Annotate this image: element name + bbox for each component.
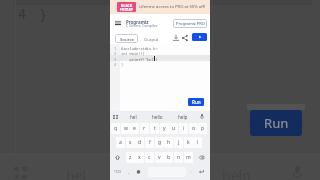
staticText: r xyxy=(143,125,146,132)
button[interactable]: q xyxy=(111,123,120,134)
button[interactable]: emoji xyxy=(133,166,143,177)
button[interactable]: ?123 xyxy=(111,166,124,177)
button[interactable]: help xyxy=(174,111,192,122)
button[interactable]: o xyxy=(189,123,198,134)
button[interactable]: g xyxy=(155,137,164,148)
staticText: f xyxy=(149,139,151,146)
staticText: Output xyxy=(144,36,159,42)
staticText: v xyxy=(158,154,161,161)
button[interactable]: Programiz PRO xyxy=(173,19,207,28)
button[interactable]: , xyxy=(125,166,132,177)
staticText: Run xyxy=(192,99,201,105)
button[interactable]: m xyxy=(184,152,193,163)
staticText: } xyxy=(39,4,48,23)
button[interactable]: r xyxy=(140,123,149,134)
button[interactable]: x xyxy=(135,152,144,163)
button[interactable]: n xyxy=(174,152,183,163)
staticText: s xyxy=(129,139,132,146)
button[interactable]: del xyxy=(195,152,207,163)
button[interactable]: p xyxy=(198,123,207,134)
staticText: printf("hel") xyxy=(121,57,158,62)
button[interactable]: Menu xyxy=(112,17,123,28)
button[interactable]: u xyxy=(169,123,178,134)
staticText: u xyxy=(172,125,176,132)
staticText: h xyxy=(167,139,171,146)
button[interactable]: Clipboard xyxy=(111,113,119,121)
button[interactable]: t xyxy=(150,123,159,134)
button[interactable]: y xyxy=(160,123,169,134)
button[interactable]: z xyxy=(126,152,135,163)
staticText: e xyxy=(133,125,136,132)
staticText: w xyxy=(124,125,128,132)
staticText: x xyxy=(138,154,141,161)
staticText: c xyxy=(148,154,151,161)
staticText: Source xyxy=(120,36,134,42)
staticText: a xyxy=(119,139,122,146)
staticText: #include<stdio.h> xyxy=(121,46,158,51)
staticText: C Online Compiler xyxy=(126,23,158,28)
staticText: help xyxy=(178,114,188,120)
staticText: } xyxy=(121,62,124,67)
button[interactable]: shift xyxy=(111,152,123,163)
staticText: g xyxy=(158,139,162,146)
staticText: 3 xyxy=(114,57,117,62)
button[interactable]: a xyxy=(116,137,125,148)
staticText: z xyxy=(129,154,132,161)
button[interactable]: Voice input xyxy=(198,112,206,120)
button[interactable]: d xyxy=(135,137,144,148)
staticText: 1 xyxy=(114,46,117,51)
staticText: i xyxy=(183,125,185,132)
staticText: l xyxy=(197,139,199,146)
staticText: 4 xyxy=(18,4,27,23)
staticText: . xyxy=(191,169,193,175)
staticText: Run xyxy=(264,114,289,132)
staticText: n xyxy=(177,154,181,161)
button[interactable]: w xyxy=(121,123,130,134)
button[interactable]: s xyxy=(126,137,135,148)
button[interactable]: j xyxy=(174,137,183,148)
button[interactable]: l xyxy=(193,137,202,148)
button[interactable]: f xyxy=(145,137,154,148)
button[interactable]: BLACK FRIDAY xyxy=(117,2,136,12)
button[interactable]: v xyxy=(155,152,164,163)
button[interactable]: Output xyxy=(141,34,161,43)
staticText: 4 xyxy=(114,62,117,67)
staticText: hello xyxy=(152,114,163,120)
button[interactable]: Run xyxy=(188,98,204,106)
button[interactable]: Run code xyxy=(192,33,207,41)
button[interactable]: enter xyxy=(196,166,207,177)
button[interactable]: hello xyxy=(148,111,166,122)
button[interactable]: Share xyxy=(180,33,189,42)
staticText: y xyxy=(163,125,166,132)
staticText: int main(){ xyxy=(121,51,145,56)
staticText: Programiz xyxy=(126,19,149,25)
staticText: m xyxy=(186,154,191,161)
staticText: BLACK FRIDAY xyxy=(120,3,133,12)
button[interactable]: Download xyxy=(171,33,180,42)
staticText: q xyxy=(114,125,118,132)
button[interactable]: i xyxy=(179,123,188,134)
staticText: Lifetime access to PRO at 60% off! xyxy=(139,4,206,10)
staticText: j xyxy=(178,139,180,146)
staticText: Programiz PRO xyxy=(176,21,205,26)
button[interactable]: k xyxy=(184,137,193,148)
staticText: d xyxy=(138,139,142,146)
staticText: b xyxy=(167,154,171,161)
staticText: ?123 xyxy=(114,170,121,174)
button[interactable]: h xyxy=(164,137,173,148)
button[interactable]: hel xyxy=(124,111,142,122)
staticText: hel xyxy=(130,114,137,120)
staticText: t xyxy=(154,125,156,132)
button[interactable]: e xyxy=(130,123,139,134)
staticText: o xyxy=(192,125,196,132)
staticText: k xyxy=(187,139,190,146)
button[interactable]: Source xyxy=(115,34,138,43)
button[interactable]: b xyxy=(164,152,173,163)
staticText: p xyxy=(201,125,205,132)
staticText: 2 xyxy=(114,51,117,56)
button[interactable]: c xyxy=(145,152,154,163)
